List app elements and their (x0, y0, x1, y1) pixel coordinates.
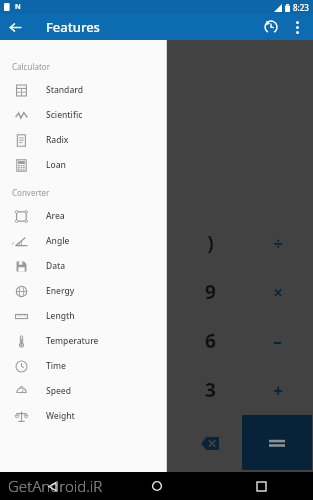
button[interactable]: Data (0, 253, 167, 278)
staticText: Data (46, 260, 66, 272)
button[interactable]: Home (105, 472, 209, 500)
button[interactable]: 9 (119, 268, 178, 316)
button[interactable]: Area (0, 203, 167, 228)
button[interactable]: ) (179, 219, 241, 267)
staticText: 6 (84, 328, 95, 354)
staticText: Speed (46, 385, 71, 397)
button[interactable] (242, 415, 312, 470)
button[interactable]: Temperature (0, 328, 167, 353)
button[interactable]: Back (0, 14, 30, 40)
button[interactable]: – (242, 317, 313, 365)
button[interactable]: Weight (0, 403, 167, 428)
staticText: Area (46, 210, 65, 222)
button[interactable]: Backspace (179, 415, 241, 472)
staticText: Converter (12, 187, 50, 198)
button[interactable]: 9 (60, 268, 118, 316)
button[interactable]: Loan (0, 152, 167, 177)
button[interactable]: Back (0, 472, 105, 500)
button[interactable]: 6 (179, 317, 241, 365)
staticText: Radix (46, 134, 69, 146)
button[interactable]: 3 (119, 366, 178, 414)
button[interactable]: 6 (60, 317, 118, 365)
button[interactable]: ÷ (242, 219, 313, 267)
staticText: N (15, 2, 21, 12)
button[interactable]: Standard (0, 77, 167, 102)
button[interactable]: 9 (179, 268, 241, 316)
staticText: Calculator (12, 61, 50, 72)
button[interactable]: 3 (60, 366, 118, 414)
staticText: Angle (46, 235, 70, 247)
button[interactable]: Time (0, 353, 167, 378)
button[interactable]: More options (285, 14, 309, 40)
staticText: Time (46, 360, 67, 372)
button[interactable]: Angle (0, 228, 167, 253)
button[interactable]: × (242, 268, 313, 316)
staticText: Energy (46, 285, 75, 297)
button[interactable]: Radix (0, 127, 167, 152)
button[interactable]: Energy (0, 278, 167, 303)
staticText: GetAndroid.iR (8, 476, 103, 496)
staticText: Features (46, 18, 100, 36)
button[interactable]: ) (119, 219, 178, 267)
staticText: × (273, 281, 283, 304)
button[interactable]: Recent apps (209, 472, 313, 500)
staticText: Temperature (46, 335, 99, 347)
button[interactable]: History (257, 14, 285, 40)
button[interactable]: Length (0, 303, 167, 328)
staticText: – (273, 330, 282, 353)
staticText: 9 (205, 279, 216, 305)
staticText: 6 (205, 328, 216, 354)
staticText: ÷ (273, 232, 283, 255)
staticText: Weight (46, 410, 75, 422)
staticText: Standard (46, 84, 83, 96)
staticText: Scientific (46, 109, 83, 121)
staticText: + (273, 379, 283, 402)
button[interactable]: Speed (0, 378, 167, 403)
button[interactable]: 3 (179, 366, 241, 414)
button[interactable]: ) (60, 219, 118, 267)
staticText: Length (46, 310, 75, 322)
staticText: 3 (205, 377, 216, 403)
staticText: ) (207, 230, 214, 256)
staticText: Loan (46, 159, 66, 171)
button[interactable]: 6 (119, 317, 178, 365)
button[interactable]: Scientific (0, 102, 167, 127)
staticText: 8:23 (293, 2, 309, 13)
button[interactable]: + (242, 366, 313, 414)
